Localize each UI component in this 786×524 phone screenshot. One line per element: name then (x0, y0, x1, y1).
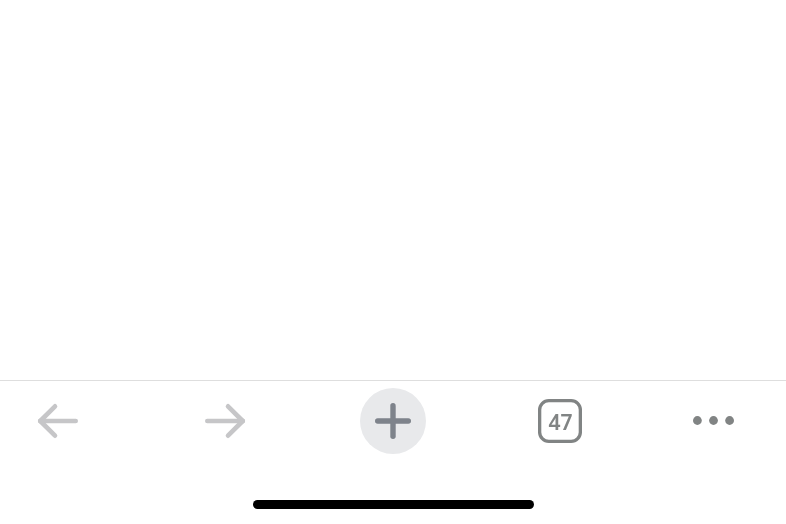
button[interactable]: Switch tabs, 47 open tabs (530, 391, 590, 451)
button[interactable]: New tab (360, 388, 426, 454)
button[interactable]: Back (24, 387, 92, 455)
button[interactable]: More options (679, 386, 747, 454)
staticText: 47 (548, 408, 573, 437)
button[interactable]: Forward (191, 387, 259, 455)
